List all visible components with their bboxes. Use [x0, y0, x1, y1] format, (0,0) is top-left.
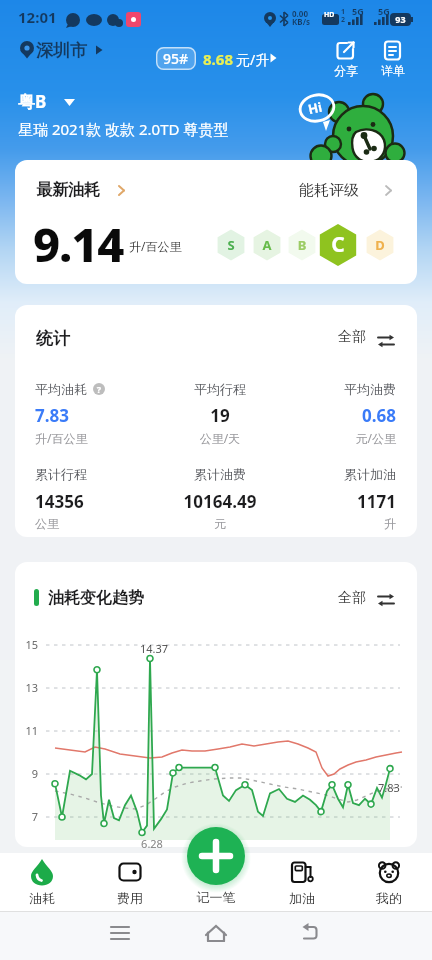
staticText: 升	[276, 516, 396, 531]
staticText: 0.68	[276, 404, 396, 427]
staticText: 95#	[163, 49, 189, 68]
staticText: 元/升	[236, 50, 270, 69]
staticText: D	[355, 236, 405, 254]
staticText: B	[277, 236, 327, 254]
staticText: 9.14	[33, 212, 124, 276]
staticText: 油耗	[10, 890, 74, 906]
staticText: 平均行程	[160, 381, 280, 397]
staticText: 12:01	[18, 7, 57, 27]
staticText: 7.83	[35, 404, 69, 427]
staticText: 平均油耗	[35, 381, 87, 397]
staticText: 11	[12, 723, 38, 738]
staticText: S	[206, 236, 256, 254]
staticText: 9	[12, 766, 38, 781]
staticText: 6.28	[132, 836, 172, 851]
staticText: 详单	[377, 63, 409, 78]
staticText: 元	[160, 516, 280, 531]
button[interactable]: 油耗	[10, 853, 74, 911]
staticText: 累计油费	[160, 466, 280, 482]
staticText: ?	[92, 383, 106, 395]
staticText: 累计行程	[35, 466, 87, 482]
staticText: 累计加油	[276, 466, 396, 482]
button[interactable]: 95#	[156, 47, 196, 70]
staticText: 1171	[276, 490, 396, 513]
staticText: 0.00	[292, 8, 308, 19]
staticText: 能耗评级	[299, 181, 359, 200]
staticText: A	[242, 236, 292, 254]
staticText: KB/s	[292, 16, 310, 27]
staticText: 14.37	[134, 641, 174, 656]
staticText: 深圳市	[36, 40, 87, 61]
staticText: 93	[390, 13, 411, 25]
staticText: 粤B	[18, 90, 47, 113]
button[interactable]: 我的	[357, 853, 421, 911]
staticText: 5G	[352, 5, 364, 17]
staticText: 最新油耗	[36, 180, 100, 200]
button[interactable]: 分享	[330, 36, 362, 78]
button[interactable]	[187, 827, 245, 885]
staticText: 13	[12, 680, 38, 695]
staticText: 15	[12, 637, 38, 652]
staticText: 统计	[36, 328, 70, 349]
staticText: 7	[12, 809, 38, 824]
staticText: 公里/天	[160, 430, 280, 446]
staticText: 2	[341, 15, 346, 25]
staticText: 5G	[378, 5, 390, 17]
staticText: 升/百公里	[35, 430, 88, 446]
button[interactable]	[16, 88, 82, 114]
staticText: 全部	[338, 589, 366, 607]
staticText: 升/百公里	[129, 238, 182, 254]
staticText: 公里	[35, 516, 59, 531]
staticText: 平均油费	[276, 381, 396, 397]
staticText: 费用	[98, 890, 162, 906]
button[interactable]: 全部	[338, 589, 398, 611]
button[interactable]: 费用	[98, 853, 162, 911]
staticText: 记一笔	[184, 889, 248, 905]
staticText: 星瑞 2021款 改款 2.0TD 尊贵型	[18, 119, 229, 139]
staticText: 我的	[357, 890, 421, 906]
staticText: 14356	[35, 490, 84, 513]
staticText: 加油	[270, 890, 334, 906]
staticText: Hi	[306, 98, 324, 118]
staticText: 分享	[330, 63, 362, 78]
button[interactable]: 加油	[270, 853, 334, 911]
button[interactable]: 深圳市	[36, 40, 87, 61]
button[interactable]: 能耗评级	[299, 181, 394, 203]
staticText: 油耗变化趋势	[48, 588, 144, 608]
staticText: 19	[160, 404, 280, 427]
staticText: 元/公里	[276, 430, 396, 446]
button[interactable]: 最新油耗	[36, 180, 136, 202]
staticText: 全部	[338, 328, 366, 346]
staticText: 7.83	[378, 780, 400, 795]
staticText: 10164.49	[160, 490, 280, 513]
button[interactable]: 全部	[338, 328, 398, 350]
button[interactable]: 详单	[377, 36, 409, 78]
staticText: 8.68	[203, 49, 233, 69]
staticText: HD	[324, 10, 335, 20]
staticText: C	[313, 230, 363, 259]
staticText: 1	[341, 7, 346, 17]
